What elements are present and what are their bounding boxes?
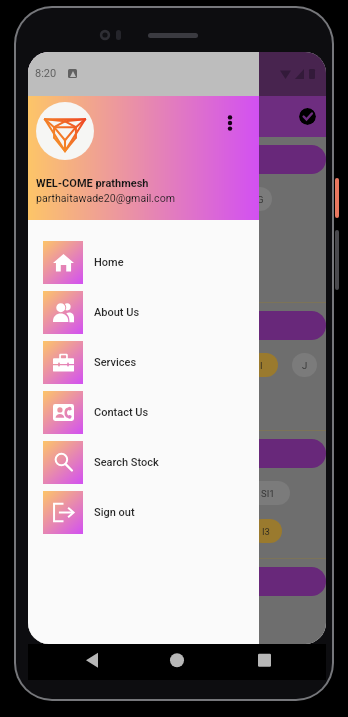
- button[interactable]: G: [248, 187, 272, 211]
- button[interactable]: GIA: [102, 263, 142, 287]
- staticText: Contact Us: [94, 406, 149, 419]
- button[interactable]: ROUND BRILLIANT CUT: [36, 567, 326, 596]
- button[interactable]: I3: [250, 519, 282, 543]
- staticText: Services: [94, 356, 137, 369]
- staticText: 8:20: [35, 67, 57, 80]
- staticText: Home: [94, 256, 124, 269]
- button[interactable]: More options: [220, 113, 240, 133]
- staticText: GOOD: [115, 398, 141, 409]
- button[interactable]: 0.75: [40, 481, 92, 505]
- button[interactable]: NONE: [40, 263, 92, 287]
- button[interactable]: Contact Us: [28, 387, 259, 437]
- button[interactable]: GOOD: [100, 391, 156, 415]
- staticText: G: [257, 194, 264, 205]
- button[interactable]: J: [292, 353, 317, 377]
- button[interactable]: VVS2: [40, 225, 96, 249]
- button[interactable]: VS1: [40, 391, 90, 415]
- button[interactable]: SI1: [246, 481, 290, 505]
- staticText: I3: [262, 526, 270, 537]
- button[interactable]: Confirm: [299, 108, 316, 125]
- button[interactable]: ROUND: [110, 187, 174, 211]
- staticText: ROUND BRILLIANT CUT: [36, 448, 138, 459]
- button[interactable]: Home: [28, 237, 259, 287]
- button[interactable]: Sign out: [28, 487, 259, 537]
- staticText: J: [302, 360, 308, 371]
- button[interactable]: ROUND BRILLIANT CUT: [36, 145, 326, 174]
- button[interactable]: ROUND BRILLIANT CUT: [36, 439, 326, 468]
- staticText: 2.01: [61, 194, 80, 205]
- staticText: ROUND: [126, 194, 158, 205]
- button[interactable]: ROUND BRILLIANT CUT: [36, 311, 326, 340]
- staticText: Search Stock: [94, 456, 159, 469]
- staticText: SI1: [261, 488, 275, 499]
- button[interactable]: Services: [28, 337, 259, 387]
- staticText: ROUND BRILLIANT CUT: [36, 320, 138, 331]
- staticText: Sign out: [94, 506, 135, 519]
- button[interactable]: 2.01: [40, 187, 100, 211]
- staticText: WEL-COME prathmesh: [36, 177, 149, 190]
- staticText: parthaitawade20@gmail.com: [36, 192, 175, 204]
- button[interactable]: 1.05: [40, 353, 98, 377]
- button[interactable]: WEL-COME prathmesh: [28, 96, 259, 220]
- button[interactable]: I: [244, 353, 278, 377]
- staticText: VVS2: [56, 232, 80, 243]
- staticText: NONE: [53, 270, 79, 281]
- staticText: ROUND BRILLIANT CUT: [36, 154, 138, 165]
- staticText: FAINT: [54, 526, 80, 537]
- button[interactable]: FAINT: [40, 519, 94, 543]
- button[interactable]: About Us: [28, 287, 259, 337]
- staticText: 1.05: [60, 360, 79, 371]
- button[interactable]: Search Stock: [28, 437, 259, 487]
- staticText: 0.75: [57, 488, 76, 499]
- staticText: I: [260, 360, 263, 371]
- staticText: About Us: [94, 306, 140, 319]
- staticText: VS1: [56, 398, 74, 409]
